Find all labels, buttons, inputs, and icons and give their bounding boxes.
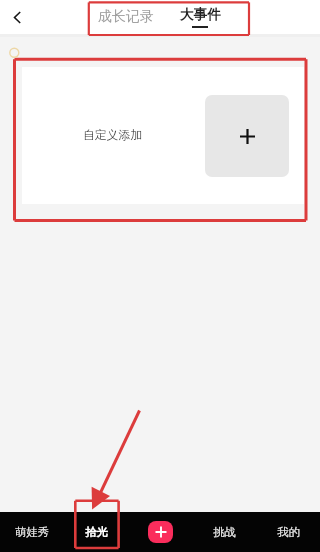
staticText: 自定义添加 — [83, 128, 142, 143]
staticText: 大事件 — [180, 6, 221, 23]
button[interactable]: 萌娃秀 — [0, 512, 64, 552]
button[interactable]: 挑战 — [192, 512, 256, 552]
button[interactable]: 我的 — [256, 512, 320, 552]
button[interactable]: 自定义添加 — [22, 67, 304, 204]
staticText: 成长记录 — [98, 8, 154, 26]
staticText: 拾光 — [85, 525, 108, 539]
button[interactable]: Add — [205, 95, 289, 177]
button[interactable]: 成长记录 — [98, 0, 154, 34]
staticText: 我的 — [277, 525, 300, 539]
button[interactable]: Back — [0, 0, 34, 34]
staticText: 挑战 — [213, 525, 236, 539]
button[interactable]: 大事件 — [178, 0, 222, 34]
staticText: 萌娃秀 — [15, 525, 49, 539]
button[interactable]: 拾光 — [64, 512, 128, 552]
button[interactable]: Create — [148, 521, 173, 543]
